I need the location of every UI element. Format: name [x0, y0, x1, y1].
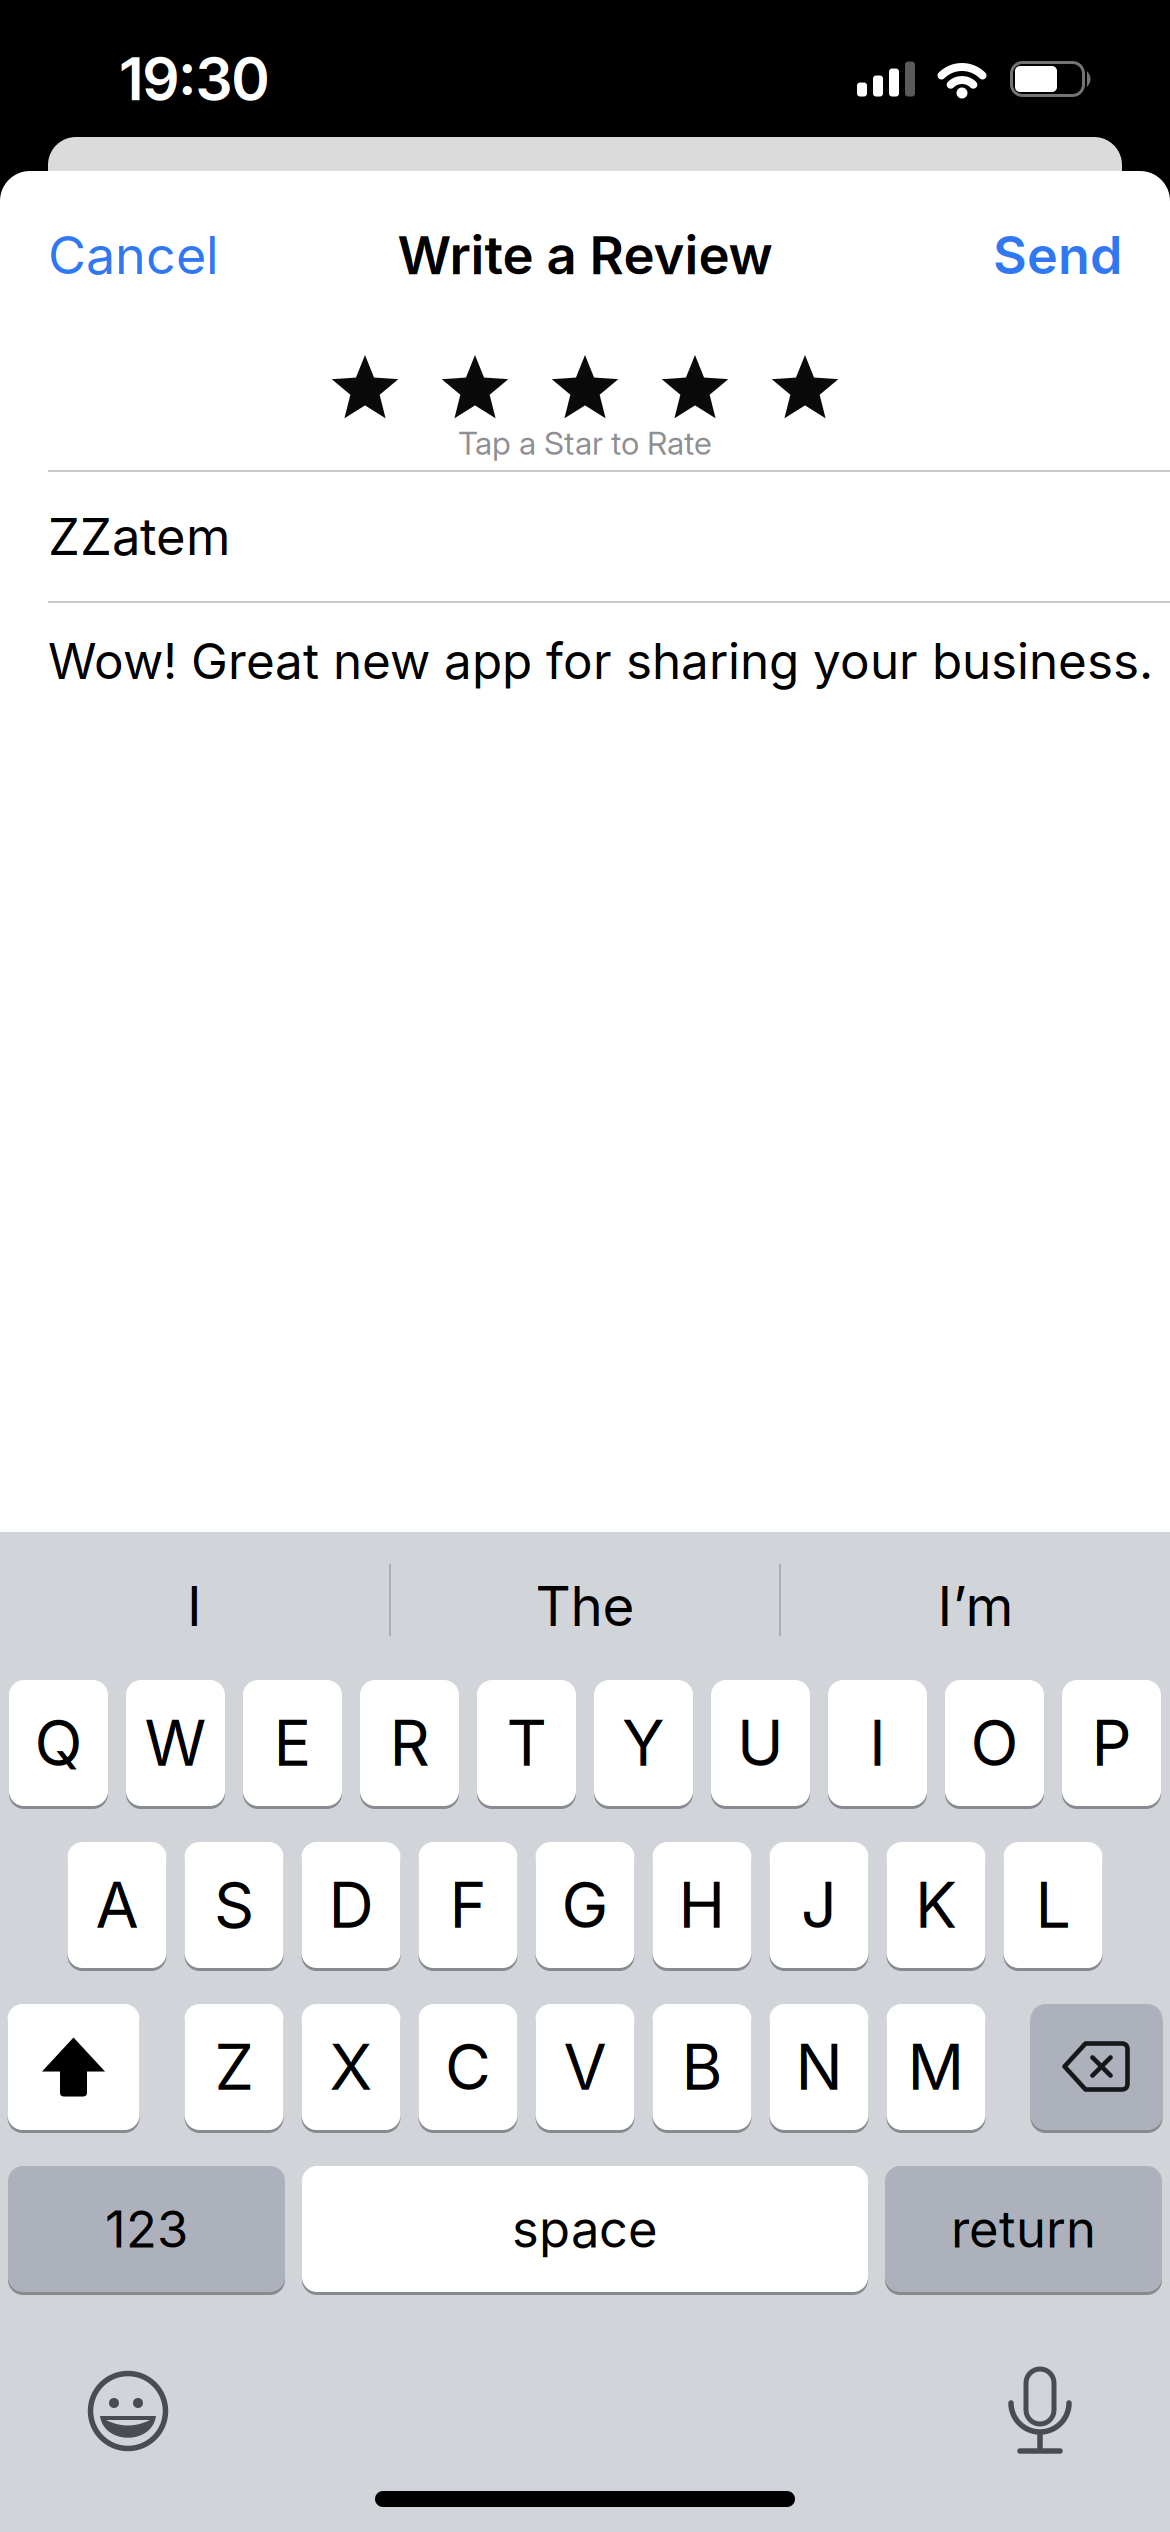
button[interactable]: M — [886, 2004, 985, 2130]
button[interactable]: Z — [184, 2004, 283, 2130]
button[interactable]: Delete — [1030, 2004, 1162, 2130]
button[interactable]: N — [769, 2004, 868, 2130]
button[interactable]: V — [535, 2004, 634, 2130]
button[interactable]: R — [360, 1680, 459, 1806]
staticText: Write a Review — [397, 223, 772, 287]
button[interactable]: Emoji — [84, 2367, 172, 2455]
staticText: The — [535, 1573, 634, 1639]
button[interactable]: U — [711, 1680, 810, 1806]
button[interactable]: D — [301, 1842, 400, 1968]
button[interactable]: ZZatem — [0, 472, 1170, 601]
button[interactable]: The — [391, 1532, 779, 1680]
button[interactable]: Cancel — [48, 223, 219, 286]
staticText: S — [214, 1867, 254, 1943]
button[interactable]: Y — [594, 1680, 693, 1806]
staticText: Cancel — [48, 223, 219, 286]
staticText: Q — [34, 1705, 82, 1781]
button[interactable]: Rate 3 stars — [550, 354, 620, 420]
button[interactable]: return — [885, 2166, 1162, 2292]
staticText: D — [328, 1867, 373, 1943]
button[interactable]: P — [1062, 1680, 1161, 1806]
staticText: I — [869, 1705, 886, 1781]
button[interactable]: X — [301, 2004, 400, 2130]
staticText: X — [329, 2029, 372, 2105]
staticText: N — [795, 2029, 842, 2105]
staticText: O — [970, 1705, 1018, 1781]
staticText: R — [389, 1705, 429, 1781]
button[interactable]: Rate 1 star — [330, 354, 400, 420]
button[interactable]: I’m — [781, 1532, 1170, 1680]
button[interactable]: L — [1003, 1842, 1102, 1968]
staticText: Wow! Great new app for sharing your busi… — [48, 631, 1153, 691]
staticText: I’m — [937, 1573, 1013, 1639]
button[interactable]: O — [945, 1680, 1044, 1806]
staticText: 19:30 — [120, 43, 269, 114]
staticText: F — [449, 1867, 486, 1943]
staticText: P — [1091, 1705, 1131, 1781]
staticText: L — [1035, 1867, 1070, 1943]
button[interactable]: I — [828, 1680, 927, 1806]
staticText: T — [506, 1705, 546, 1781]
button[interactable]: G — [535, 1842, 634, 1968]
staticText: Z — [214, 2029, 253, 2105]
button[interactable]: Rate 2 stars — [440, 354, 510, 420]
button[interactable]: Send — [993, 223, 1122, 286]
button[interactable]: K — [886, 1842, 985, 1968]
button[interactable]: I — [0, 1532, 389, 1680]
button[interactable]: H — [652, 1842, 751, 1968]
staticText: G — [561, 1867, 608, 1943]
staticText: H — [678, 1867, 725, 1943]
staticText: U — [737, 1705, 784, 1781]
button[interactable]: Wow! Great new app for sharing your busi… — [0, 603, 1170, 719]
staticText: return — [951, 2198, 1096, 2260]
staticText: A — [95, 1867, 138, 1943]
button[interactable]: A — [67, 1842, 166, 1968]
button[interactable]: Rate 5 stars — [770, 354, 840, 420]
staticText: W — [144, 1705, 206, 1781]
button[interactable]: S — [184, 1842, 283, 1968]
button[interactable]: Q — [9, 1680, 108, 1806]
button[interactable]: W — [126, 1680, 225, 1806]
button[interactable]: E — [243, 1680, 342, 1806]
staticText: Send — [993, 223, 1122, 286]
staticText: V — [563, 2029, 606, 2105]
staticText: E — [273, 1705, 311, 1781]
staticText: M — [907, 2029, 964, 2105]
staticText: Tap a Star to Rate — [458, 424, 712, 462]
button[interactable]: space — [302, 2166, 868, 2292]
staticText: space — [512, 2198, 658, 2260]
button[interactable]: J — [769, 1842, 868, 1968]
staticText: 123 — [105, 2198, 188, 2260]
button[interactable]: Dictate — [1008, 2365, 1072, 2457]
staticText: I — [187, 1573, 202, 1639]
button[interactable]: 123 — [8, 2166, 285, 2292]
staticText: J — [801, 1867, 837, 1943]
staticText: B — [681, 2029, 722, 2105]
staticText: ZZatem — [48, 506, 230, 567]
button[interactable]: B — [652, 2004, 751, 2130]
staticText: K — [915, 1867, 957, 1943]
button[interactable]: Rate 4 stars — [660, 354, 730, 420]
button[interactable]: C — [418, 2004, 517, 2130]
button[interactable]: T — [477, 1680, 576, 1806]
staticText: C — [445, 2029, 491, 2105]
button[interactable]: Shift — [7, 2004, 139, 2130]
staticText: Y — [622, 1705, 665, 1781]
button[interactable]: F — [418, 1842, 517, 1968]
